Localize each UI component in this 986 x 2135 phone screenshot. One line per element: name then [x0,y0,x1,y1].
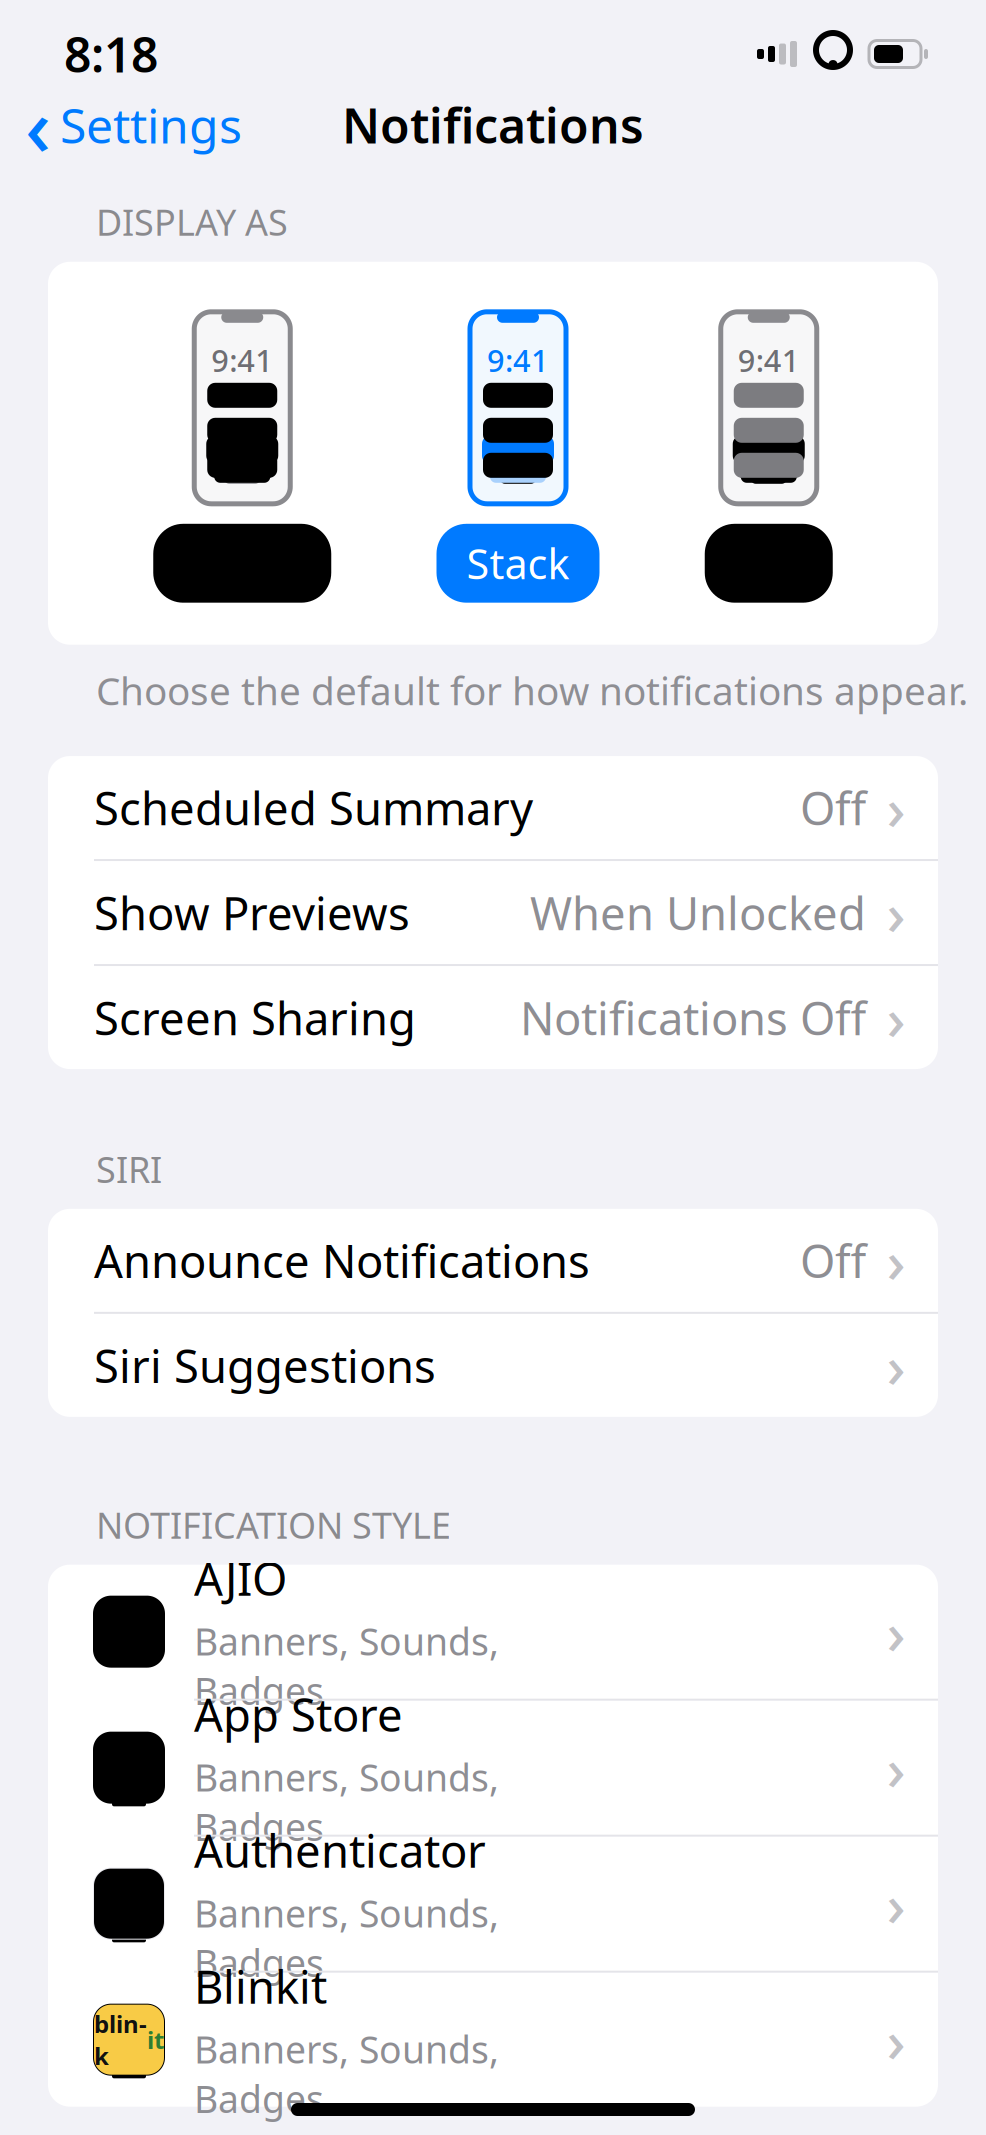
staticText: Show Previews [94,882,410,943]
staticText: A [109,1588,148,1662]
staticText: Announce Notifications [94,1230,590,1290]
staticText: Notifications Off [520,987,866,1048]
button[interactable]: Siri Suggestions [48,1314,938,1417]
staticText: Stack [466,536,569,591]
button[interactable]: Scheduled Summary [48,756,938,859]
staticText: DISPLAY AS [96,198,288,246]
staticText: Banners, Sounds, Badges [194,1752,499,1851]
staticText: 9:41 [487,340,549,380]
staticText: SIRI [96,1145,162,1193]
button[interactable] [48,1837,938,1971]
staticText: Notifications [342,93,644,157]
staticText: › [886,979,905,1056]
staticText: Screen Sharing [94,987,416,1048]
button[interactable]: 9:41 [153,312,331,603]
button[interactable]: Screen Sharing [48,966,938,1069]
staticText: Choose the default for how notifications… [96,665,968,716]
staticText: App Store [194,1684,403,1744]
staticText: Settings [60,93,242,157]
staticText: Banners, Sounds, Badges [194,2024,499,2123]
staticText: › [886,2001,905,2079]
staticText: Scheduled Summary [94,777,533,838]
staticText: Authenticator [194,1820,486,1880]
staticText: › [886,874,905,951]
staticText: A [110,1729,147,1807]
staticText: ‹ [25,72,51,178]
staticText: NOTIFICATION STYLE [96,1501,451,1549]
button[interactable]: 9:41 [705,312,833,603]
staticText: AJIO [194,1548,287,1608]
staticText: 8:18 [64,22,158,86]
staticText: Siri Suggestions [94,1335,436,1395]
button[interactable]: ‹ [0,79,242,171]
staticText: When Unlocked [530,882,866,943]
button[interactable]: Show Previews [48,861,938,964]
staticText: › [886,1729,905,1807]
staticText: it [147,2024,164,2056]
staticText: › [886,1865,905,1943]
button[interactable] [48,1973,938,2107]
staticText: › [886,1221,905,1299]
staticText: Banners, Sounds, Badges [194,1616,499,1715]
staticText: Off [800,1230,866,1290]
staticText: › [886,1593,905,1671]
button[interactable]: 9:41 [436,312,599,603]
button[interactable]: A [48,1565,938,1699]
staticText: Banners, Sounds, Badges [194,1888,499,1987]
staticText: 9:41 [738,340,800,380]
staticText: blink [94,2008,147,2071]
button[interactable]: Announce Notifications [48,1209,938,1312]
staticText: › [886,769,905,846]
staticText: › [886,1326,905,1404]
staticText: Off [800,777,866,838]
button[interactable] [48,1701,938,1835]
staticText: 9:41 [211,340,273,380]
staticText: Blinkit [194,1956,327,2016]
